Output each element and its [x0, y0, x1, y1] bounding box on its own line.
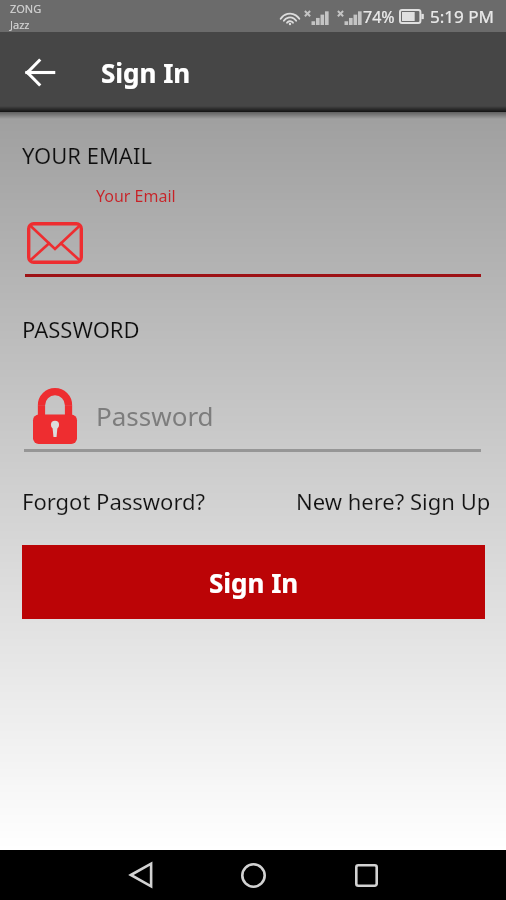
- button[interactable]: Recent apps: [336, 850, 396, 900]
- button[interactable]: Back: [14, 46, 66, 98]
- staticText: Forgot Password?: [22, 486, 206, 516]
- staticText: Your Email: [96, 185, 176, 207]
- staticText: Password: [96, 398, 214, 433]
- button[interactable]: Forgot Password?: [22, 486, 206, 516]
- staticText: Sign In: [209, 565, 299, 600]
- staticText: YOUR EMAIL: [22, 140, 152, 170]
- button[interactable]: Home: [223, 850, 283, 900]
- staticText: Sign In: [101, 55, 191, 90]
- button[interactable]: New here? Sign Up: [296, 486, 491, 516]
- button[interactable]: Sign In: [22, 545, 485, 619]
- staticText: New here? Sign Up: [296, 486, 491, 516]
- staticText: 74%: [363, 6, 395, 28]
- staticText: Jazz: [10, 17, 30, 32]
- staticText: ZONG: [10, 1, 42, 16]
- button[interactable]: Back: [111, 850, 171, 900]
- staticText: PASSWORD: [22, 314, 140, 344]
- staticText: 5:19 PM: [430, 5, 494, 28]
